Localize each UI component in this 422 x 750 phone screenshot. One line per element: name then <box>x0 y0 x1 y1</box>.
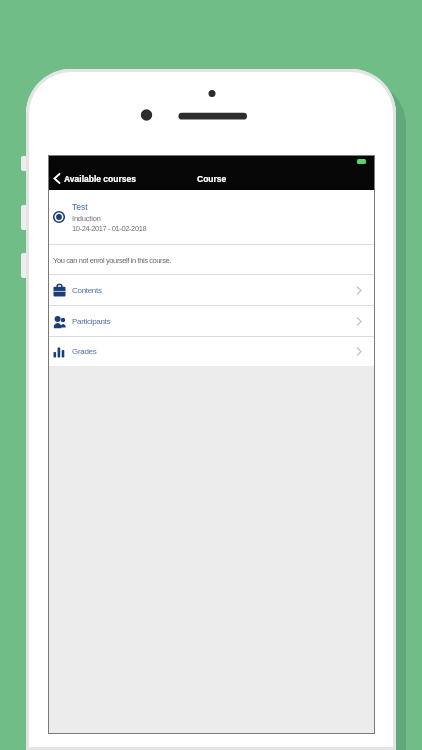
staticText: Course <box>197 174 227 183</box>
button[interactable]: Test <box>49 190 374 244</box>
button[interactable]: Contents <box>49 275 374 305</box>
button[interactable]: Grades <box>49 337 374 366</box>
staticText: Contents <box>72 286 102 295</box>
staticText: Available courses <box>64 174 136 183</box>
staticText: 10-24-2017 - 01-02-2018 <box>72 224 147 232</box>
staticText: You can not enrol yourself in this cours… <box>53 256 172 264</box>
staticText: Grades <box>72 347 97 356</box>
button[interactable]: Available courses <box>53 173 136 184</box>
button[interactable]: Participants <box>49 306 374 336</box>
staticText: Participants <box>72 317 111 326</box>
staticText: Induction <box>72 214 101 222</box>
staticText: Test <box>72 202 88 211</box>
